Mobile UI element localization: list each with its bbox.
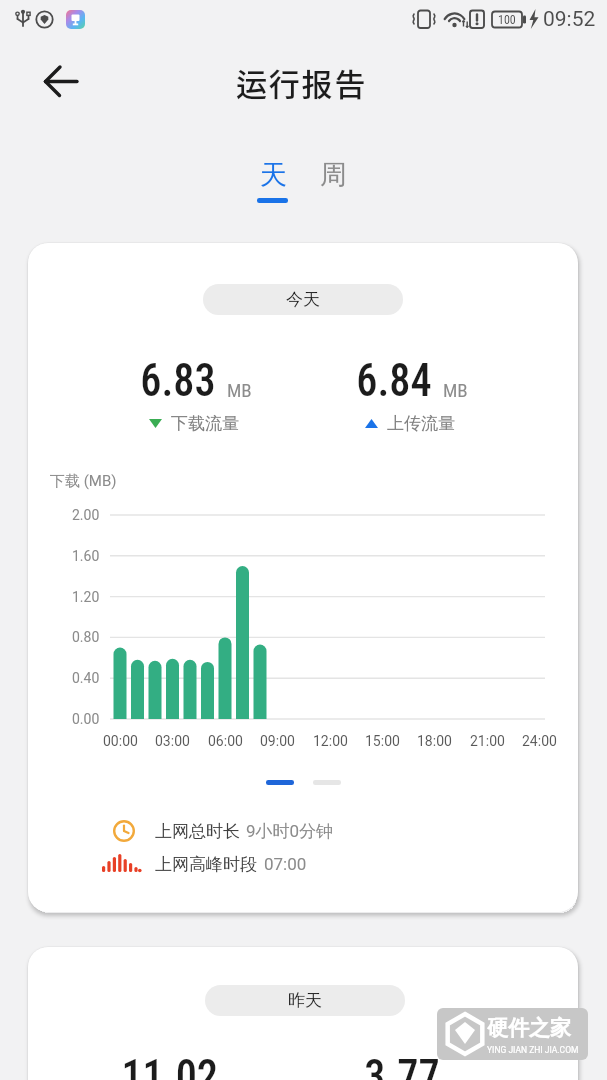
staticText: 12:00 — [313, 733, 348, 749]
staticText: 硬件之家 — [487, 1015, 571, 1041]
staticText: 21:00 — [470, 733, 505, 749]
staticText: 周 — [320, 158, 347, 192]
staticText: 上传流量 — [387, 413, 455, 434]
staticText: 9小时0分钟 — [246, 821, 334, 842]
staticText: 上网高峰时段 — [155, 854, 257, 875]
staticText: 09:00 — [260, 733, 295, 749]
staticText: 1.20 — [72, 589, 100, 605]
staticText: 24:00 — [522, 733, 557, 749]
staticText: 天 — [260, 158, 287, 192]
staticText: 15:00 — [365, 733, 400, 749]
staticText: 昨天 — [288, 990, 322, 1011]
staticText: 下载 (MB) — [50, 472, 117, 491]
staticText: 18:00 — [417, 733, 452, 749]
staticText: YING JIAN ZHI JIA.COM — [487, 1045, 579, 1055]
button[interactable]: 天 — [244, 145, 302, 205]
staticText: 11.02 — [121, 1048, 219, 1080]
staticText: 6.83 — [140, 352, 216, 407]
staticText: 运行报告 — [236, 60, 368, 104]
staticText: 今天 — [286, 289, 320, 310]
staticText: 3.77 — [364, 1048, 440, 1080]
staticText: 06:00 — [208, 733, 243, 749]
staticText: 下载流量 — [171, 413, 239, 434]
staticText: MB — [443, 379, 468, 401]
staticText: 0.80 — [72, 629, 100, 645]
staticText: 0.40 — [72, 670, 100, 686]
staticText: 07:00 — [264, 854, 307, 874]
staticText: MB — [227, 379, 252, 401]
staticText: 100 — [498, 13, 516, 27]
button[interactable]: 周 — [304, 145, 362, 205]
staticText: 上网总时长 — [155, 821, 240, 842]
staticText: 1.60 — [72, 548, 100, 564]
staticText: 2.00 — [72, 507, 100, 523]
staticText: 6.84 — [356, 352, 432, 407]
staticText: 0.00 — [72, 711, 100, 727]
button[interactable] — [36, 56, 85, 105]
staticText: 03:00 — [155, 733, 190, 749]
staticText: 00:00 — [103, 733, 138, 749]
staticText: 09:52 — [543, 7, 596, 32]
